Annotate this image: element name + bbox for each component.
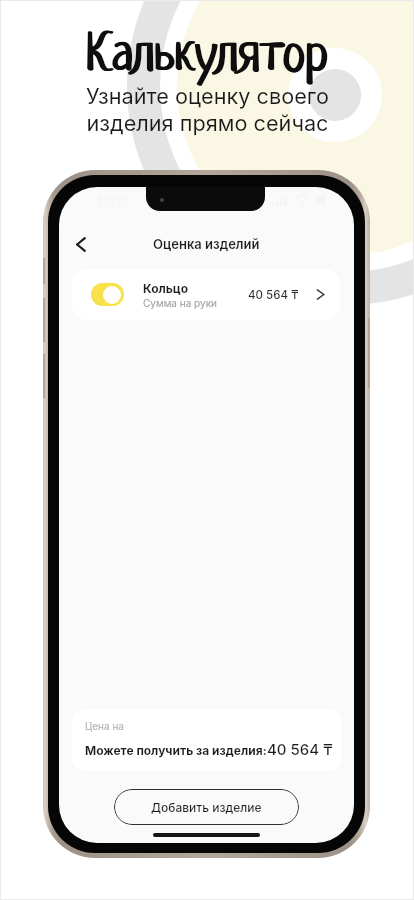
staticText: Калькулятор <box>87 30 330 85</box>
button[interactable]: Добавить изделие <box>114 789 299 825</box>
staticText: Цена на <box>85 720 124 732</box>
staticText: Добавить изделие <box>151 800 262 815</box>
staticText: Сумма на руки <box>143 297 217 309</box>
staticText: 40 564 ₸ <box>248 288 299 302</box>
staticText: 40 564 ₸ <box>267 740 333 758</box>
staticText: Оценка изделий <box>153 236 260 252</box>
button[interactable]: Кольцо <box>72 269 340 320</box>
staticText: Кольцо <box>143 281 189 296</box>
staticText: Можете получить за изделия: <box>85 743 267 758</box>
button[interactable]: Назад <box>66 233 96 255</box>
staticText: Калькулятор <box>86 30 329 85</box>
staticText: Узнайте оценку своего изделия прямо сейч… <box>86 83 329 136</box>
staticText: Калькулятор <box>85 30 328 85</box>
staticText: Калькулятор <box>86 30 329 85</box>
